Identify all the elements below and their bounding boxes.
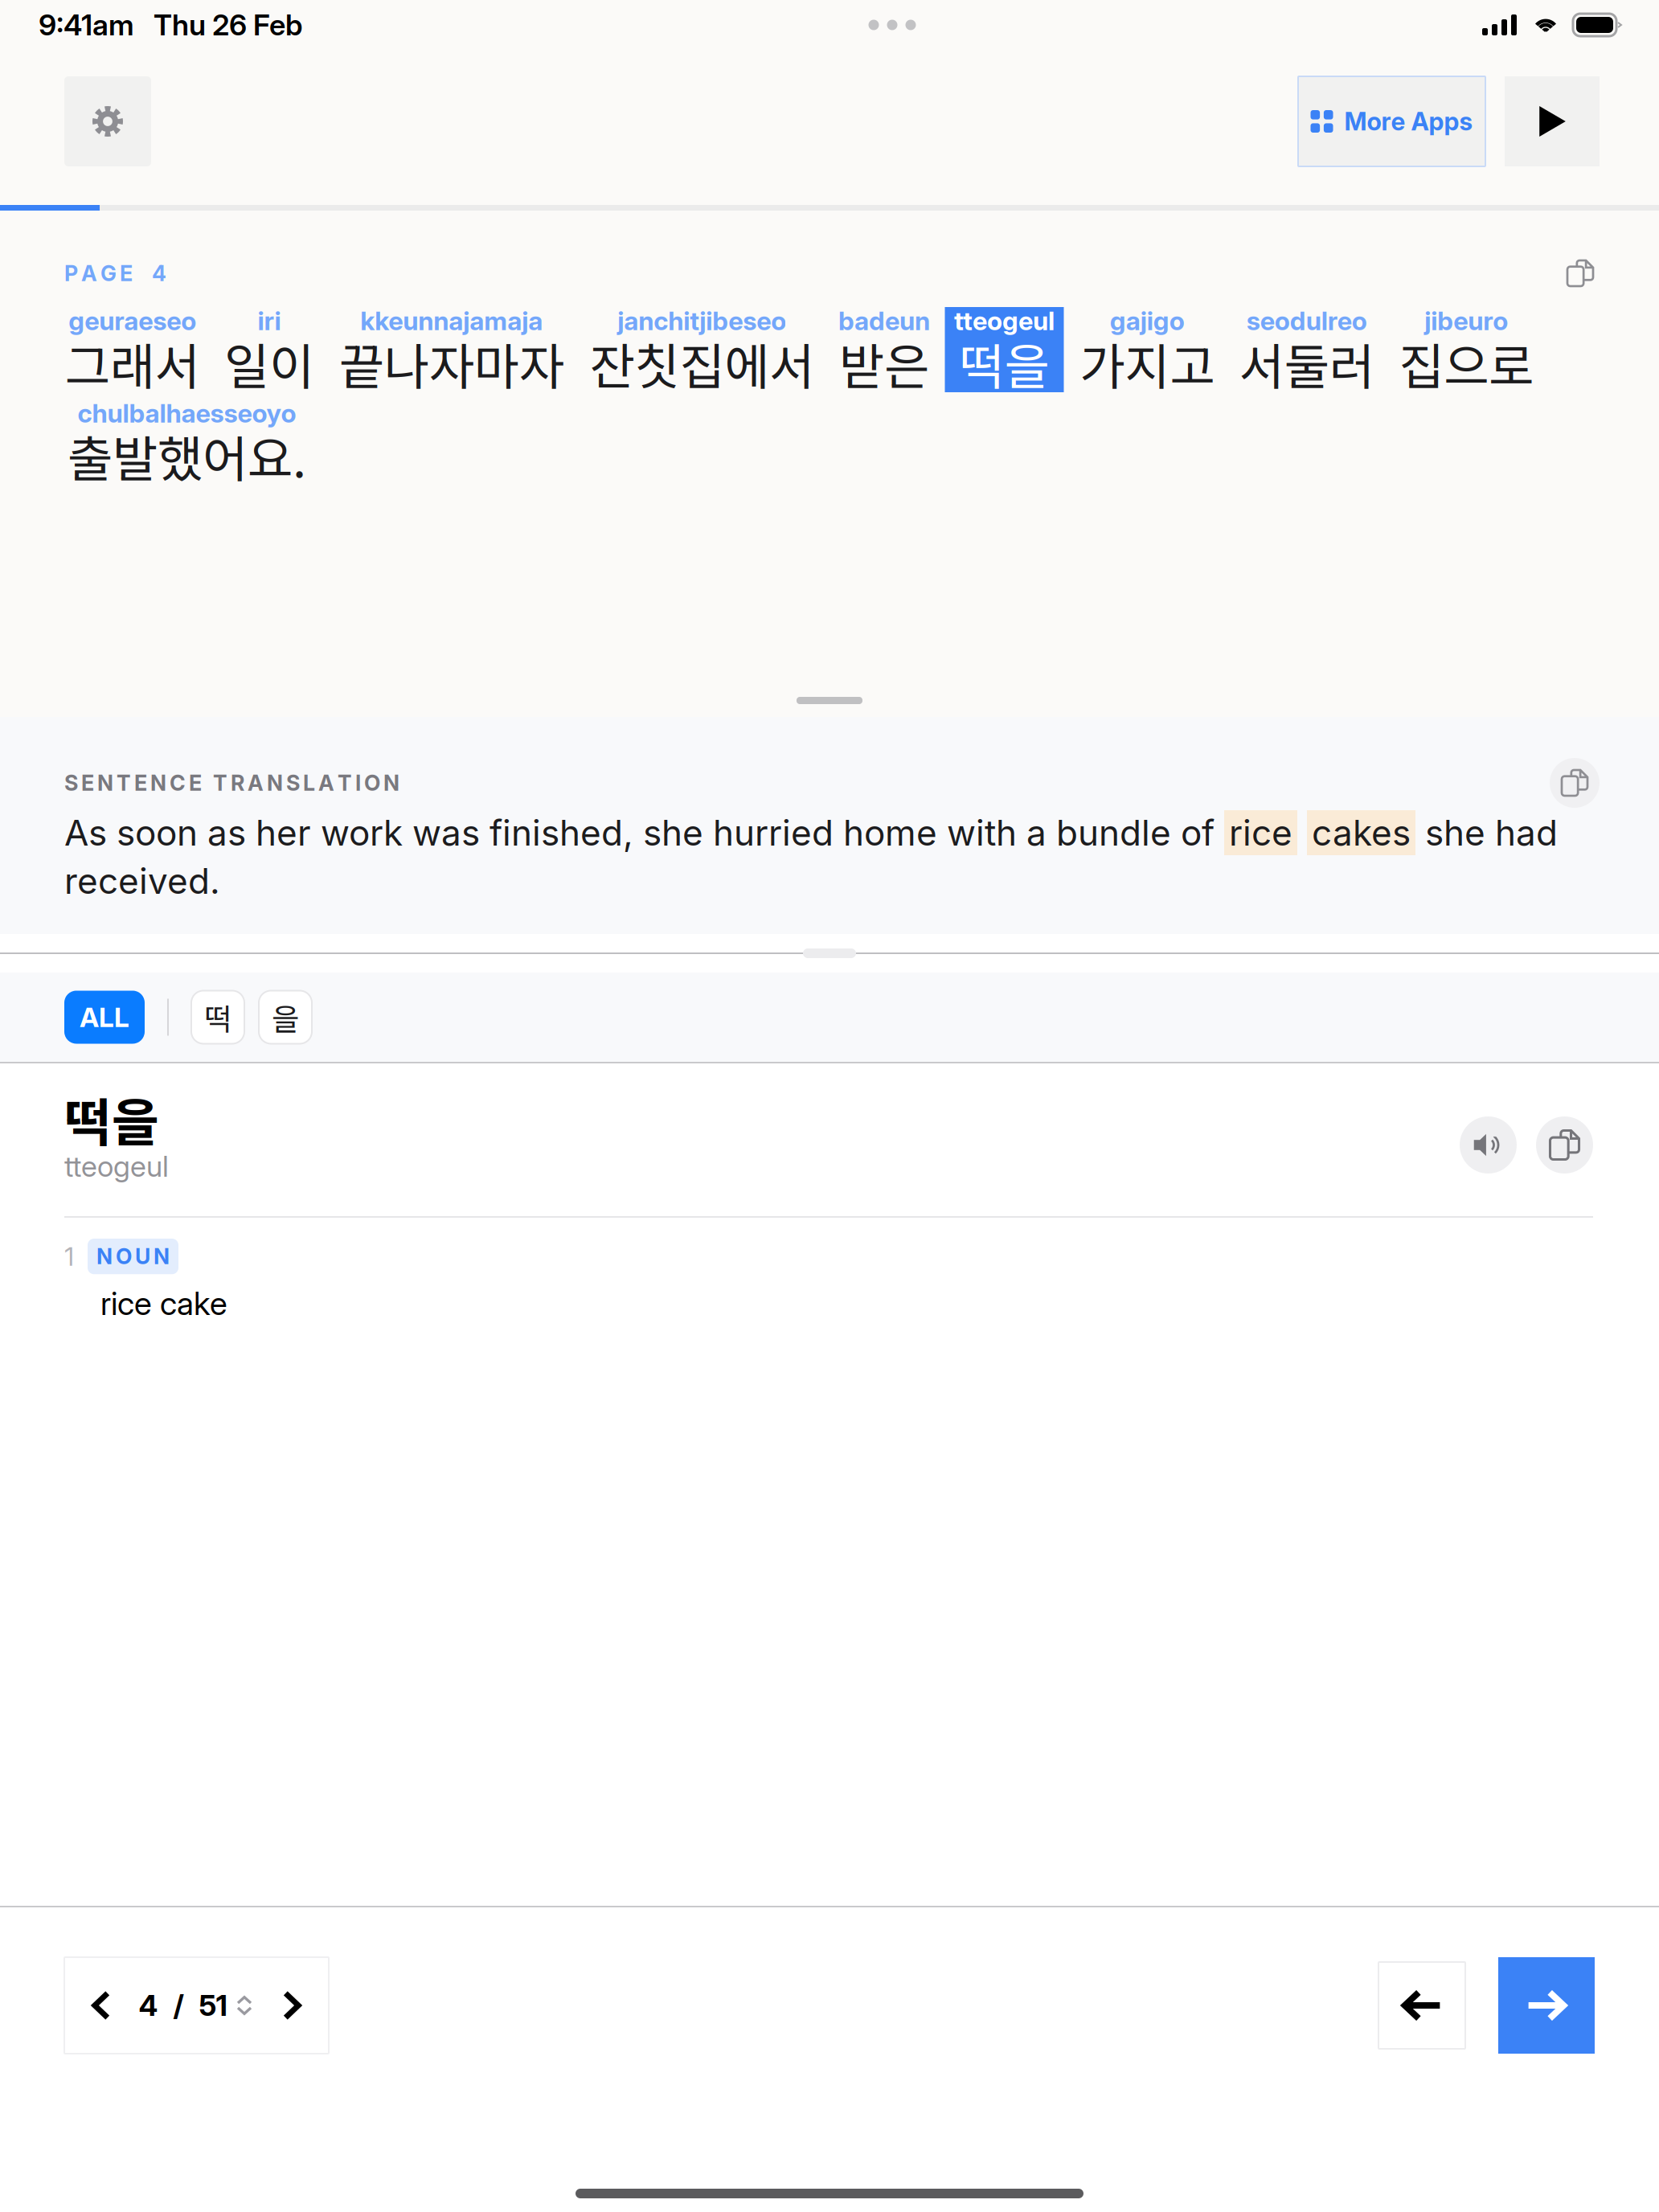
staticText: cakes (1312, 811, 1411, 854)
staticText: home (843, 811, 937, 854)
staticText: finished (490, 811, 623, 854)
button[interactable]: Next page (261, 1957, 322, 2054)
staticText: was (412, 811, 480, 854)
staticText: 51 (199, 1988, 227, 2023)
staticText: jibeuro (1424, 305, 1508, 336)
staticText: 떡을 (959, 328, 1049, 399)
staticText: P A G E 4 (64, 260, 166, 286)
staticText: 일이 (224, 328, 314, 399)
staticText: 1 (64, 1241, 74, 1272)
staticText: Thu 26 Feb (154, 7, 302, 42)
staticText: More Apps (1344, 106, 1473, 136)
staticText: geuraeseo (68, 305, 196, 336)
staticText: . (210, 860, 220, 902)
staticText: janchitjibeseo (617, 305, 786, 336)
staticText: 출발했어요. (68, 420, 306, 491)
staticText: 9:41am (39, 7, 134, 42)
staticText: rice (1229, 811, 1292, 854)
staticText: 떡 (204, 995, 231, 1039)
staticText: work (321, 811, 403, 854)
button[interactable]: Previous page (71, 1957, 132, 2054)
staticText: badeun (838, 305, 930, 336)
staticText: tteogeul (64, 1149, 169, 1184)
staticText: 끝나자마자 (339, 328, 564, 399)
staticText: a (1026, 811, 1047, 854)
staticText: received (64, 860, 210, 902)
staticText: kkeunnajamaja (360, 305, 543, 336)
staticText: N O U N (96, 1243, 170, 1269)
staticText: bundle (1056, 811, 1171, 854)
staticText: , (623, 811, 633, 854)
staticText: tteogeul (954, 305, 1055, 336)
staticText: 4 (139, 1988, 158, 2023)
staticText: 잔칫집에서 (589, 328, 814, 399)
button[interactable]: Play pronunciation (1460, 1116, 1517, 1174)
staticText: iri (258, 305, 281, 336)
staticText: gajigo (1110, 305, 1185, 336)
staticText: hurried (713, 811, 834, 854)
staticText: rice cake (100, 1284, 227, 1323)
staticText: she (1425, 811, 1485, 854)
staticText: S E N T E N C E T R A N S L A T I O N (64, 770, 399, 796)
staticText: she (643, 811, 703, 854)
staticText: seodulreo (1247, 305, 1367, 336)
staticText: 집으로 (1399, 328, 1534, 399)
button[interactable]: Copy translation (1550, 758, 1600, 808)
button[interactable]: Go forward (1498, 1957, 1595, 2054)
button[interactable]: Copy sentence (1561, 254, 1600, 293)
staticText: with (947, 811, 1017, 854)
button[interactable]: Go back (1378, 1962, 1465, 2049)
staticText: 가지고 (1080, 328, 1215, 399)
staticText: chulbalhaesseoyo (78, 398, 296, 429)
staticText: as (207, 811, 246, 854)
button[interactable]: Play audio (1505, 76, 1600, 166)
staticText: / (173, 1988, 184, 2023)
button[interactable]: Settings (64, 76, 151, 166)
staticText: her (256, 811, 311, 854)
staticText: 그래서 (65, 328, 200, 399)
staticText: 을 (272, 995, 299, 1039)
staticText: 서둘러 (1239, 328, 1374, 399)
staticText: 떡을 (64, 1082, 159, 1156)
staticText: As (64, 811, 107, 854)
staticText: 받은 (839, 328, 929, 399)
button[interactable]: More Apps (1298, 76, 1485, 166)
button[interactable]: 을 (259, 991, 312, 1044)
staticText: ALL (80, 1001, 129, 1033)
button[interactable]: ALL (64, 991, 145, 1044)
staticText: of (1181, 811, 1215, 854)
staticText: soon (117, 811, 198, 854)
staticText: had (1495, 811, 1558, 854)
button[interactable]: 떡 (191, 991, 244, 1044)
button[interactable]: Copy word (1536, 1116, 1593, 1174)
